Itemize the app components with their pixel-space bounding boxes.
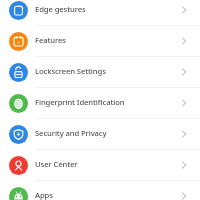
staticText: Features [35,35,180,45]
button[interactable]: Fingerprint Identification [0,88,200,119]
button[interactable]: Lockscreen Settings [0,57,200,88]
staticText: Security and Privacy [35,128,180,138]
button[interactable]: Apps [0,181,200,200]
staticText: Edge gestures [35,4,180,14]
staticText: Lockscreen Settings [35,66,180,76]
button[interactable]: Features [0,26,200,57]
staticText: Fingerprint Identification [35,97,180,107]
staticText: Apps [35,190,180,200]
button[interactable]: Edge gestures [0,0,200,26]
button[interactable]: User Center [0,150,200,181]
staticText: User Center [35,159,180,169]
button[interactable]: Security and Privacy [0,119,200,150]
